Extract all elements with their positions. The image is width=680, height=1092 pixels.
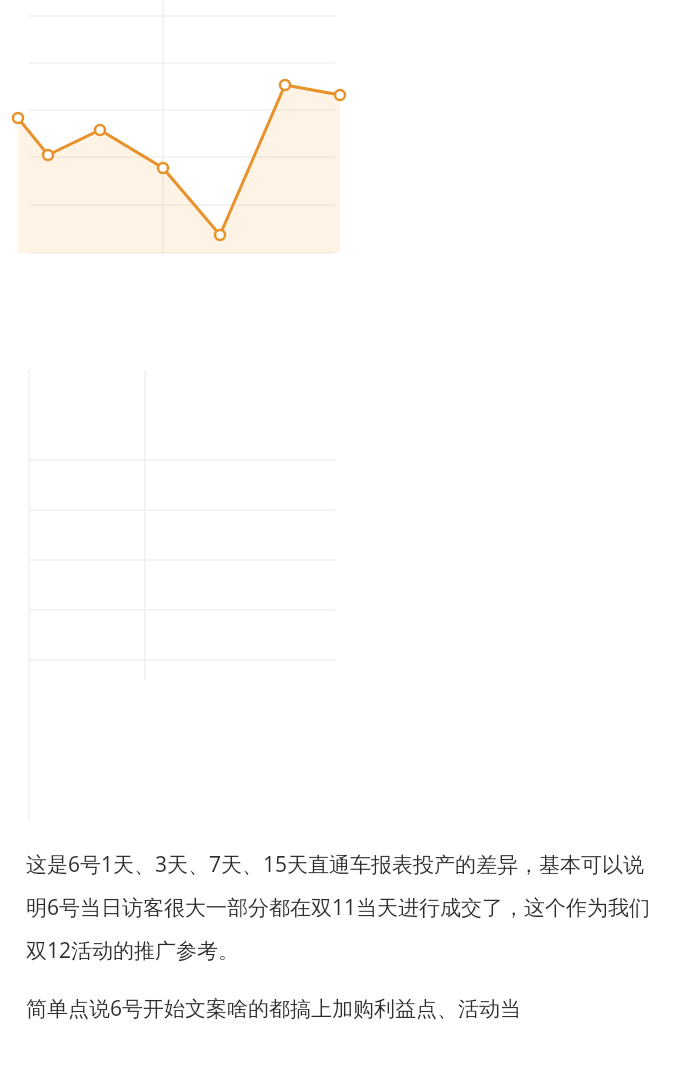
staticText: 简单点说6号开始文案啥的都搞上加购利益点、活动当 (26, 994, 522, 1023)
staticText: 这是6号1天、3天、7天、15天直通车报表投产的差异，基本可以说明6号当日访客很… (26, 850, 654, 964)
